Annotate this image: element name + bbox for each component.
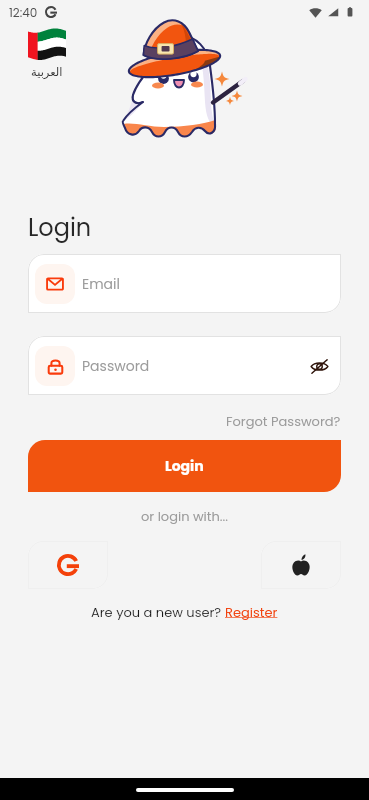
button[interactable]: Sign in with Google (28, 541, 108, 589)
button[interactable]: العربية (24, 28, 70, 80)
staticText: Login (165, 456, 204, 476)
staticText: Login (28, 211, 92, 245)
button[interactable]: Login (28, 440, 341, 492)
button[interactable]: Forgot Password? (226, 412, 341, 430)
staticText: Password (82, 356, 150, 376)
staticText: العربية (31, 65, 63, 78)
button[interactable]: Email (28, 254, 341, 313)
button[interactable]: Show password (306, 353, 332, 379)
staticText: Email (82, 274, 120, 294)
staticText: Are you a new user? (91, 603, 225, 621)
staticText: 12:40 (9, 4, 38, 21)
staticText: or login with... (141, 507, 229, 525)
button[interactable]: Password (28, 336, 341, 395)
button[interactable]: Register (225, 603, 278, 621)
button[interactable]: Sign in with Apple (261, 541, 341, 589)
